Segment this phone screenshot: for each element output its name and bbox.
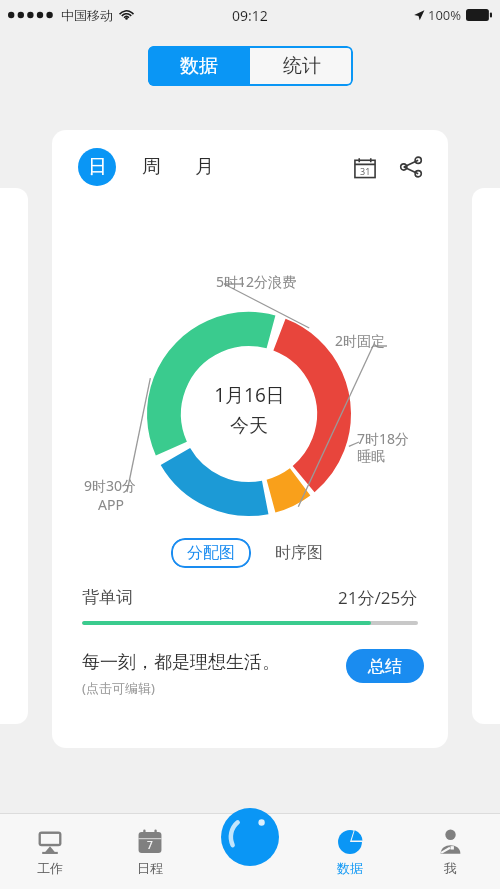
staticText: 100% (428, 6, 462, 24)
staticText: 每一刻，都是理想生活。 (82, 651, 280, 674)
staticText: 数据 (180, 54, 218, 78)
staticText: 今天 (230, 414, 268, 438)
staticText: 数据 (337, 860, 363, 876)
button[interactable]: 时序图 (269, 538, 329, 568)
button[interactable]: 总结 (346, 649, 424, 683)
button[interactable]: Calendar (350, 152, 380, 182)
staticText: 中国移动 (61, 7, 113, 23)
staticText: 2时固定 (335, 331, 386, 350)
staticText: 周 (142, 155, 161, 179)
staticText: 7 (147, 838, 153, 852)
button[interactable]: 分配图 (171, 538, 251, 568)
button[interactable]: 每一刻，都是理想生活。 (82, 651, 280, 697)
button[interactable]: 数据 (300, 814, 400, 889)
staticText: 时序图 (275, 543, 323, 563)
staticText: 统计 (283, 54, 321, 78)
button[interactable]: 背单词 (82, 586, 418, 625)
button[interactable]: Share (396, 152, 426, 182)
button[interactable]: 统计 (250, 46, 353, 86)
button[interactable]: 工作 (0, 814, 100, 889)
staticText: 总结 (368, 656, 402, 677)
staticText: 5时12分浪费 (216, 272, 297, 291)
staticText: 月 (195, 155, 214, 179)
button[interactable]: 7 (100, 814, 200, 889)
staticText: 日程 (137, 860, 163, 876)
button[interactable]: Add (221, 808, 279, 866)
button[interactable]: 周 (138, 155, 165, 179)
staticText: 我 (444, 860, 457, 876)
staticText: (点击可编辑) (82, 679, 155, 697)
staticText: 工作 (37, 860, 63, 876)
button[interactable]: 月 (191, 155, 218, 179)
staticText: 分配图 (187, 543, 235, 563)
staticText: APP (98, 495, 124, 514)
staticText: 7时18分 (357, 429, 410, 448)
button[interactable]: 我 (400, 814, 500, 889)
staticText: 31 (360, 165, 371, 177)
staticText: 背单词 (82, 587, 133, 608)
staticText: 9时30分 (84, 476, 137, 495)
staticText: 1月16日 (214, 382, 285, 408)
staticText: 日 (88, 155, 107, 179)
button[interactable]: 日 (78, 148, 116, 186)
staticText: 09:12 (232, 6, 268, 25)
staticText: 睡眠 (357, 448, 385, 466)
staticText: 21分/25分 (338, 586, 418, 609)
button[interactable]: 数据 (148, 46, 250, 86)
